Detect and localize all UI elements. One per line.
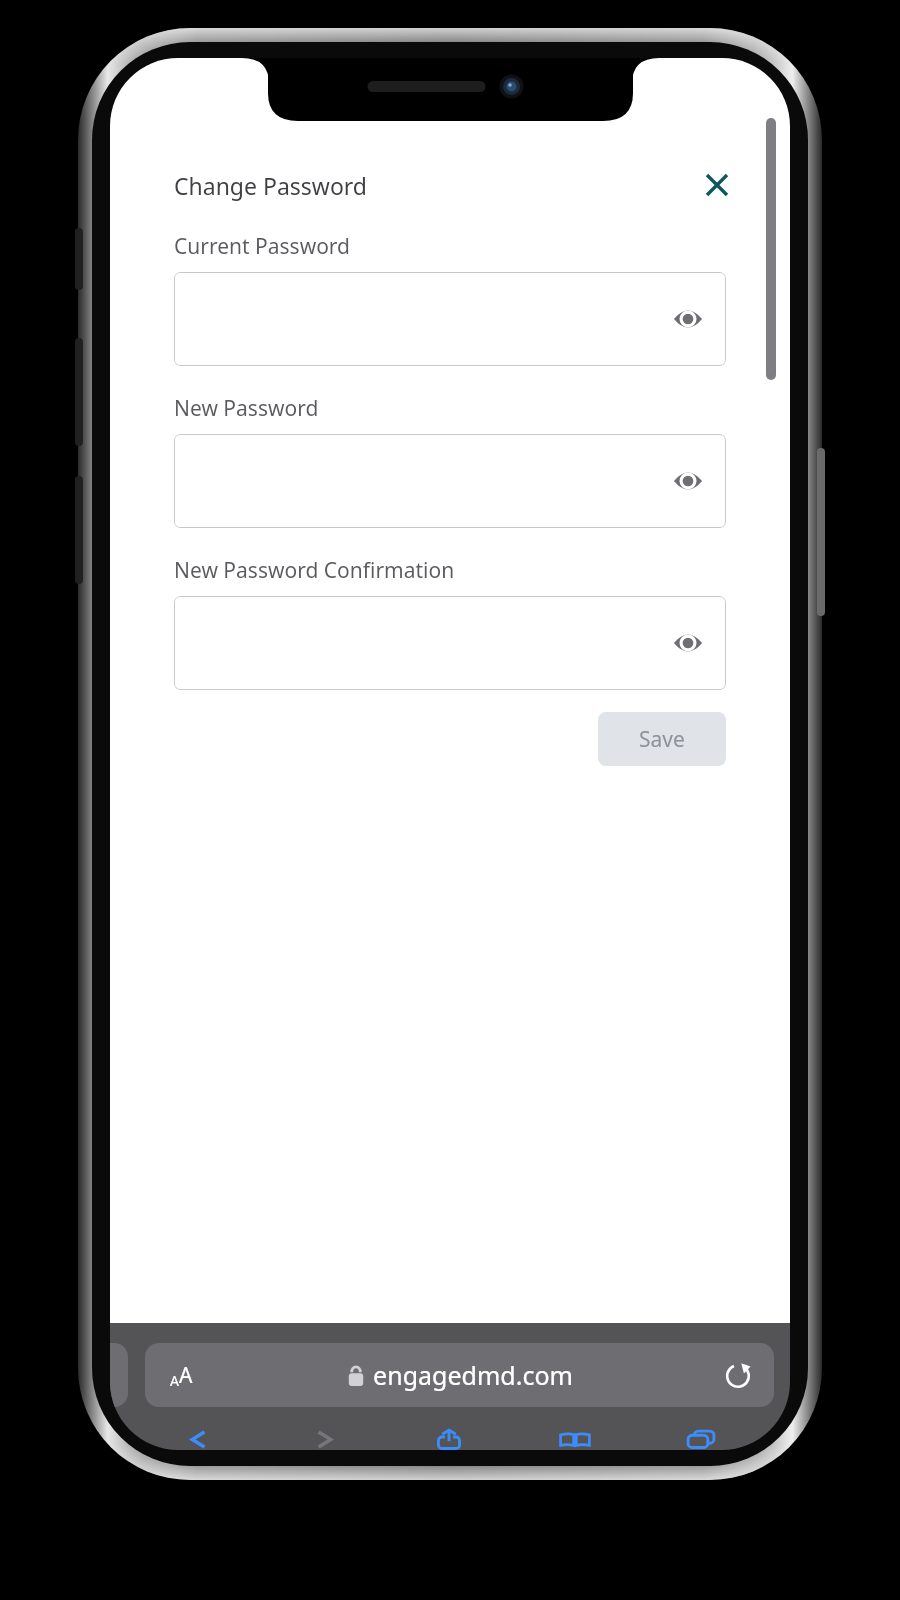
button[interactable]: Show password (174, 272, 726, 366)
button[interactable]: Save (598, 712, 726, 766)
staticText: Save (639, 725, 685, 754)
button[interactable]: Reload (716, 1353, 760, 1397)
staticText: New Password Confirmation (174, 556, 455, 585)
staticText: A (170, 1371, 179, 1390)
button[interactable]: Text size options (145, 1343, 774, 1407)
button[interactable]: Bookmarks (512, 1429, 638, 1450)
button[interactable]: Back (136, 1429, 261, 1450)
button[interactable]: Forward (261, 1429, 386, 1450)
button[interactable]: Text size options (159, 1353, 203, 1397)
button[interactable]: Show password (668, 299, 708, 339)
button[interactable]: Show password (668, 623, 708, 663)
button[interactable]: Tabs (638, 1429, 764, 1450)
button[interactable]: Show password (174, 596, 726, 690)
staticText: Current Password (174, 232, 351, 261)
button[interactable]: Close (694, 162, 740, 208)
staticText: New Password (174, 394, 319, 423)
button[interactable]: Share (386, 1429, 512, 1450)
button[interactable]: Show password (668, 461, 708, 501)
staticText: engagedmd.com (373, 1358, 573, 1392)
button[interactable]: Show password (174, 434, 726, 528)
staticText: A (179, 1361, 193, 1390)
staticText: Change Password (174, 170, 367, 201)
